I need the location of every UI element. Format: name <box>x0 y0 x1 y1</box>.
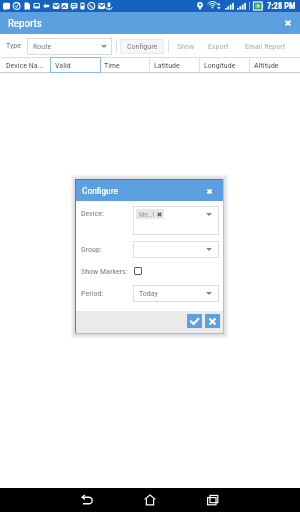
staticText: Period: <box>81 289 104 298</box>
staticText: Group: <box>81 245 102 254</box>
staticText: Longitude <box>204 61 236 70</box>
button[interactable] <box>133 241 219 258</box>
staticText: Device Na... <box>6 61 44 70</box>
button[interactable]: Cancel <box>205 314 220 328</box>
button[interactable]: Back <box>74 488 100 512</box>
button[interactable]: Route <box>27 38 112 55</box>
staticText: 7:28 PM <box>267 1 296 11</box>
staticText: Today <box>139 289 158 298</box>
staticText: Configure <box>127 42 158 51</box>
staticText: Email Report <box>245 42 286 51</box>
staticText: Route <box>33 42 52 51</box>
staticText: Me..! <box>139 210 154 219</box>
staticText: Show Markers: <box>81 267 128 276</box>
staticText: Reports <box>8 17 42 30</box>
button[interactable]: Recents <box>200 488 226 512</box>
button[interactable]: Today <box>133 285 219 302</box>
button[interactable]: Valid <box>50 57 101 73</box>
staticText: Type <box>6 41 21 50</box>
staticText: Show <box>177 42 195 51</box>
button[interactable]: Email Report <box>241 39 289 53</box>
button[interactable]: Close <box>280 15 296 31</box>
button[interactable]: Show Markers checkbox <box>134 267 142 275</box>
staticText: Latitude <box>154 61 180 70</box>
button[interactable]: Configure <box>120 39 164 54</box>
staticText: Altitude <box>254 61 279 70</box>
button[interactable]: Close dialog <box>202 184 216 198</box>
button[interactable]: Home <box>137 488 163 512</box>
staticText: Configure <box>82 185 118 196</box>
button[interactable]: Export <box>204 39 232 53</box>
staticText: Time <box>104 61 120 70</box>
button[interactable]: Show <box>173 39 198 53</box>
button[interactable]: Apply <box>187 314 202 328</box>
staticText: Export <box>208 42 229 51</box>
staticText: Valid <box>55 61 71 70</box>
staticText: Device: <box>81 209 104 218</box>
button[interactable]: Me..! <box>133 206 219 235</box>
